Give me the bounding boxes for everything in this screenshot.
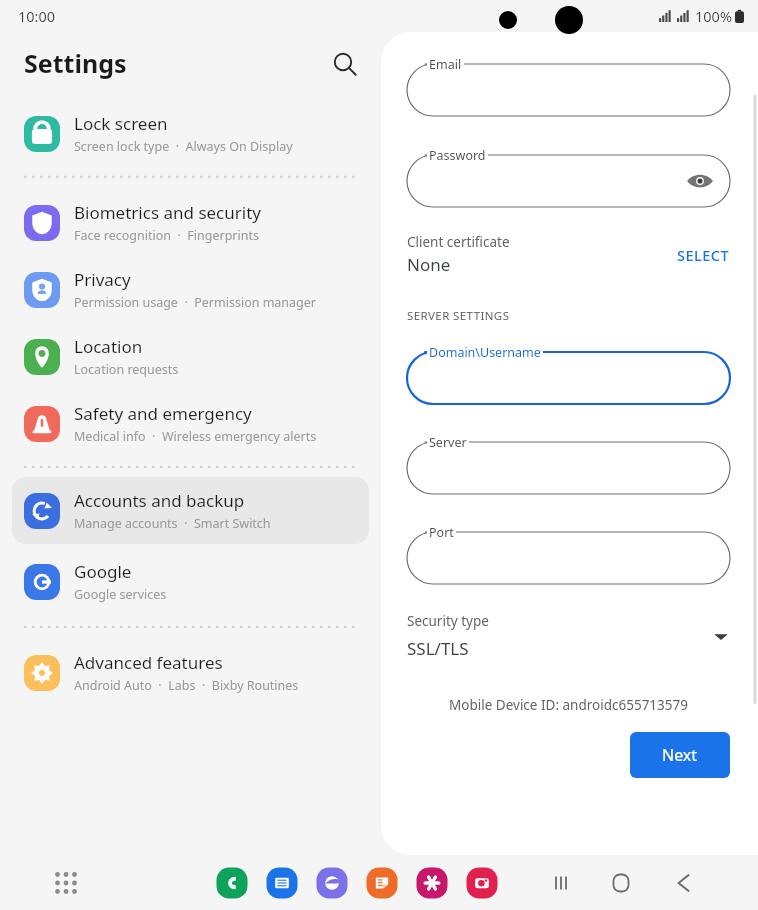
button[interactable]: Email: [407, 54, 730, 116]
staticText: Advanced features: [74, 651, 223, 674]
button[interactable]: Messages: [263, 864, 301, 902]
button[interactable]: Client certificate: [407, 233, 730, 276]
staticText: Location requests: [74, 361, 179, 378]
button[interactable]: Search: [325, 44, 363, 82]
button[interactable]: Phone: [213, 864, 251, 902]
staticText: Location: [74, 335, 143, 358]
button[interactable]: Privacy: [12, 256, 369, 323]
staticText: Server: [429, 434, 467, 451]
button[interactable]: Internet: [313, 864, 351, 902]
staticText: Google services: [74, 586, 167, 603]
staticText: Face recognition · Fingerprints: [74, 227, 259, 244]
button[interactable]: Camera: [463, 864, 501, 902]
staticText: Privacy: [74, 268, 131, 291]
staticText: Android Auto · Labs · Bixby Routines: [74, 677, 299, 694]
staticText: Screen lock type · Always On Display: [74, 138, 293, 155]
staticText: Google: [74, 560, 132, 583]
staticText: Security type: [407, 612, 489, 630]
button[interactable]: Safety and emergency: [12, 390, 369, 457]
button[interactable]: Server: [407, 432, 730, 494]
button[interactable]: Advanced features: [12, 639, 369, 706]
button[interactable]: Port: [407, 522, 730, 584]
button[interactable]: Back: [662, 864, 700, 902]
staticText: Lock screen: [74, 112, 168, 135]
button[interactable]: Password: [407, 145, 730, 207]
staticText: 100%: [695, 6, 732, 26]
staticText: Medical info · Wireless emergency alerts: [74, 428, 317, 445]
staticText: Manage accounts · Smart Switch: [74, 515, 271, 532]
button[interactable]: Location: [12, 323, 369, 390]
staticText: Next: [662, 744, 698, 766]
button[interactable]: Accounts and backup: [12, 477, 369, 544]
staticText: Password: [429, 147, 486, 164]
staticText: Domain\Username: [429, 344, 541, 361]
staticText: Settings: [24, 46, 127, 80]
button[interactable]: Apps: [48, 865, 84, 901]
button[interactable]: Security type: [407, 612, 730, 660]
staticText: SELECT: [677, 245, 730, 265]
button[interactable]: Notes: [363, 864, 401, 902]
button[interactable]: Domain\Username: [407, 342, 730, 404]
staticText: SSL/TLS: [407, 637, 469, 660]
staticText: Safety and emergency: [74, 402, 252, 425]
staticText: SERVER SETTINGS: [407, 308, 510, 324]
button[interactable]: Recents: [542, 864, 580, 902]
staticText: Permission usage · Permission manager: [74, 294, 317, 311]
staticText: 10:00: [18, 6, 56, 26]
staticText: Biometrics and security: [74, 201, 261, 224]
staticText: None: [407, 253, 451, 276]
button[interactable]: Lock screen: [12, 100, 369, 167]
button[interactable]: Home: [602, 864, 640, 902]
staticText: Port: [429, 524, 454, 541]
staticText: Accounts and backup: [74, 489, 245, 512]
staticText: Mobile Device ID: androidc655713579: [407, 696, 730, 714]
staticText: Email: [429, 56, 462, 73]
button[interactable]: Google: [12, 548, 369, 615]
button[interactable]: Next: [630, 732, 730, 778]
staticText: Client certificate: [407, 233, 510, 251]
button[interactable]: Gallery: [413, 864, 451, 902]
button[interactable]: Biometrics and security: [12, 189, 369, 256]
